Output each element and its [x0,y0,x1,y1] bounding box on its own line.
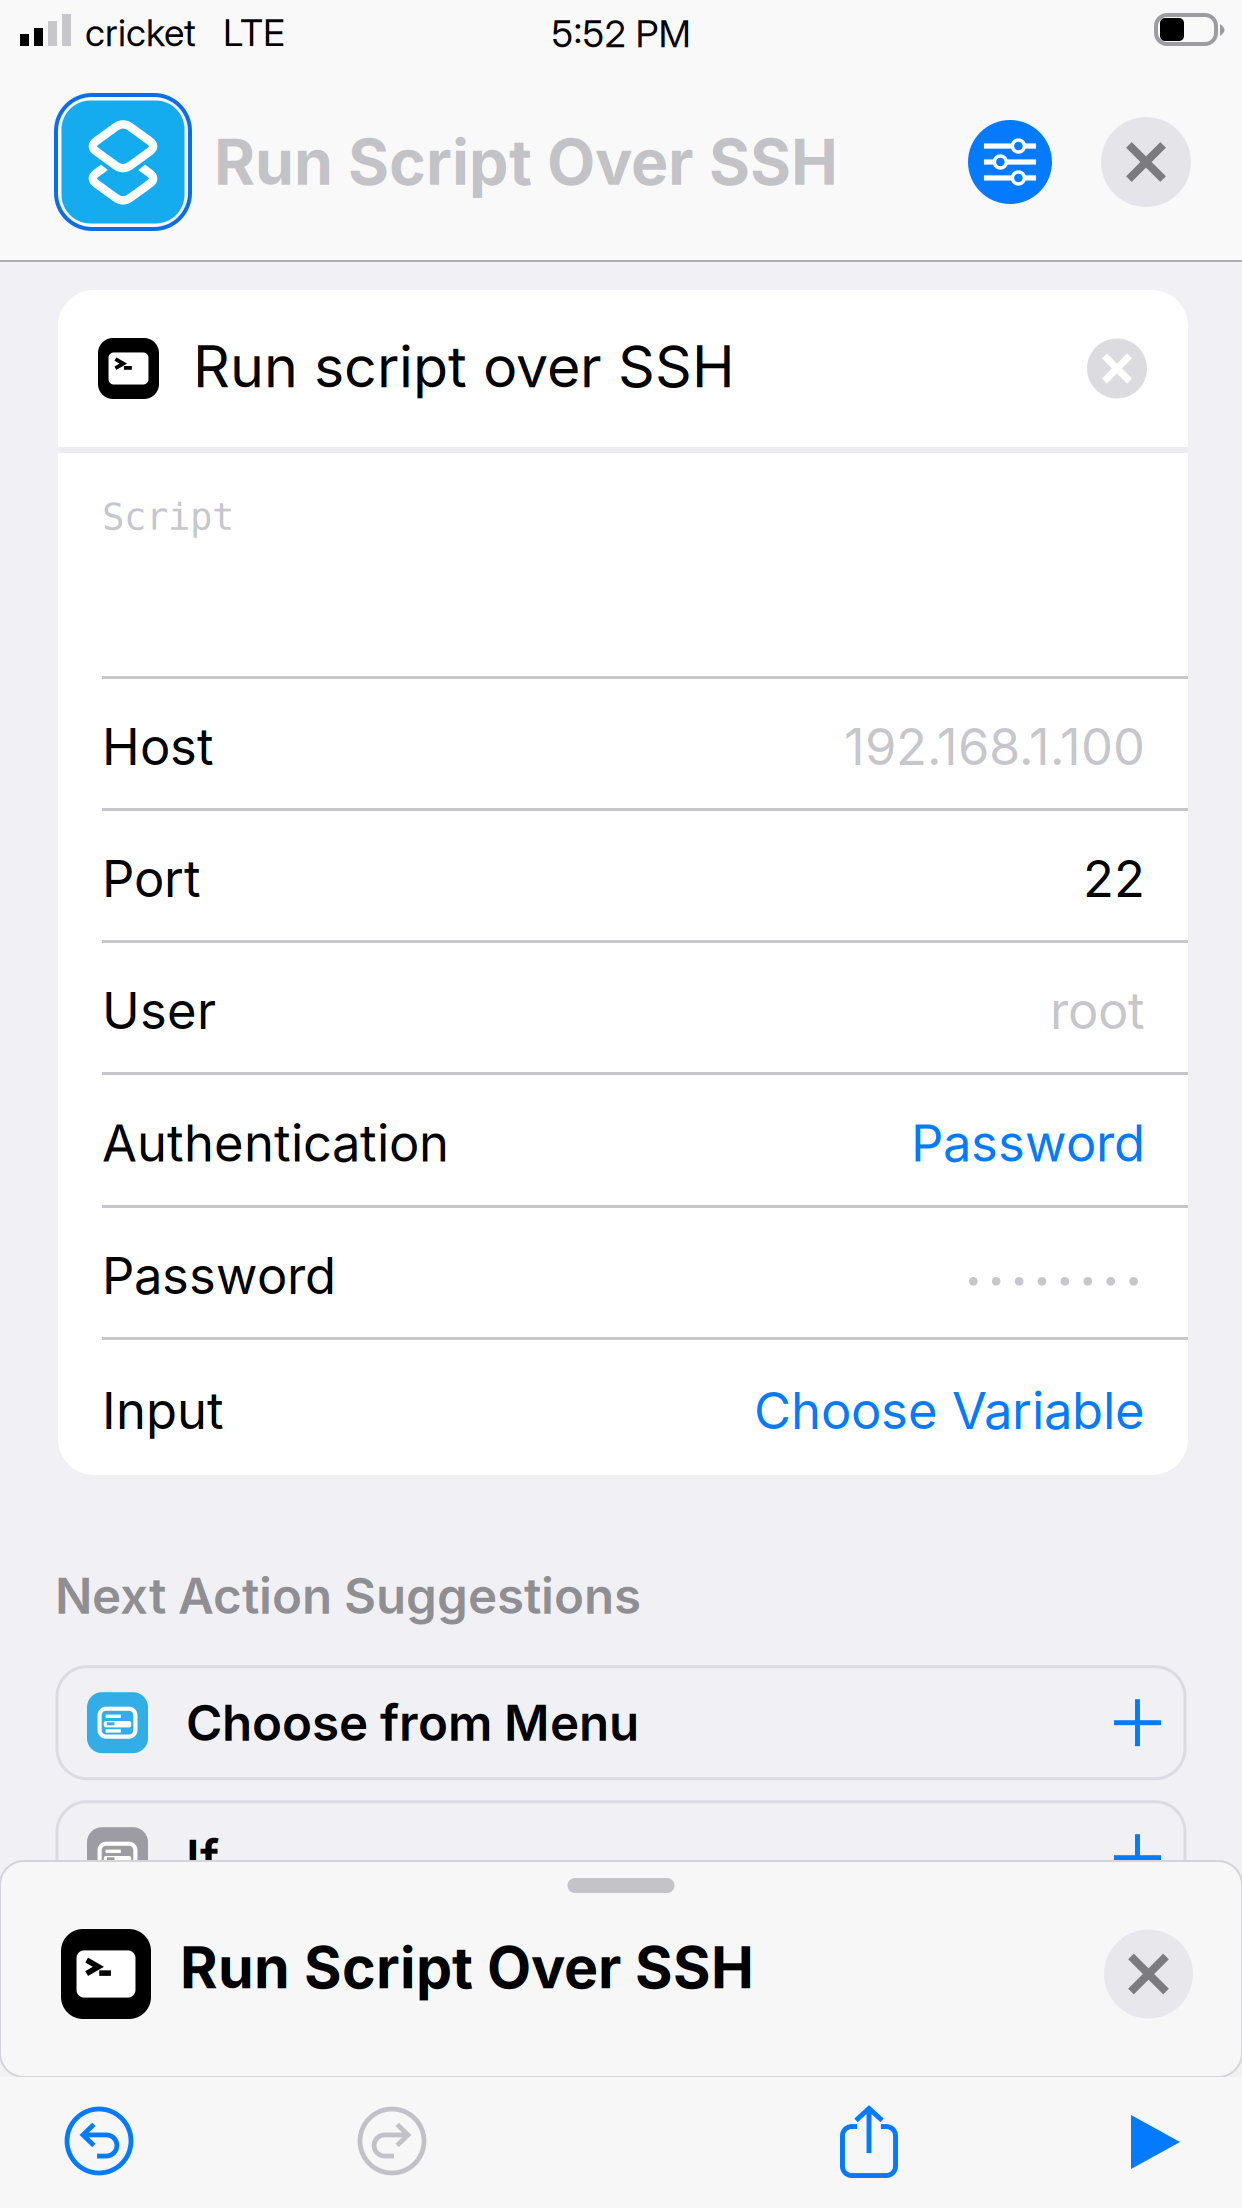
staticText: Run Script Over SSH [180,1933,754,2002]
staticText: Choose from Menu [186,1693,639,1752]
button[interactable]: If [57,1802,1185,1914]
button[interactable]: Undo [67,2109,131,2173]
button[interactable]: Redo [360,2109,424,2173]
staticText: Run Script Over SSH [214,124,838,200]
staticText: Script [102,495,234,538]
button[interactable]: Password [58,1208,1188,1337]
staticText: Authentication [102,1112,449,1174]
button[interactable]: Share [840,2106,898,2178]
staticText: cricket [85,10,196,55]
staticText: 192.168.1.100 [844,716,1145,777]
button[interactable]: Host [58,679,1188,808]
staticText: 22 [1083,848,1145,909]
staticText: Password [102,1245,336,1306]
button[interactable]: Action settings [968,120,1052,204]
staticText: Host [102,716,214,777]
staticText: Next Action Suggestions [55,1566,641,1626]
staticText: Port [102,848,201,909]
button[interactable]: Authentication [58,1075,1188,1205]
button[interactable]: Run [1131,2115,1180,2169]
button[interactable]: Choose from Menu [57,1667,1185,1779]
button[interactable]: Run script over SSH [58,290,1188,447]
staticText: root [1050,980,1145,1041]
button[interactable]: Script [58,453,1188,676]
button[interactable]: Port [58,811,1188,940]
staticText: Password [911,1112,1145,1174]
button[interactable]: Run Script Over SSH [0,1929,1242,2019]
staticText: LTE [223,10,285,55]
staticText: Run script over SSH [193,332,735,401]
staticText: 5:52 PM [551,11,690,56]
button[interactable]: Input [58,1340,1188,1475]
button[interactable]: User [58,943,1188,1072]
staticText: User [102,980,216,1041]
staticText: Input [102,1380,224,1441]
staticText: If [186,1828,219,1887]
button[interactable]: Close [1101,117,1191,207]
staticText: Choose Variable [754,1380,1145,1441]
